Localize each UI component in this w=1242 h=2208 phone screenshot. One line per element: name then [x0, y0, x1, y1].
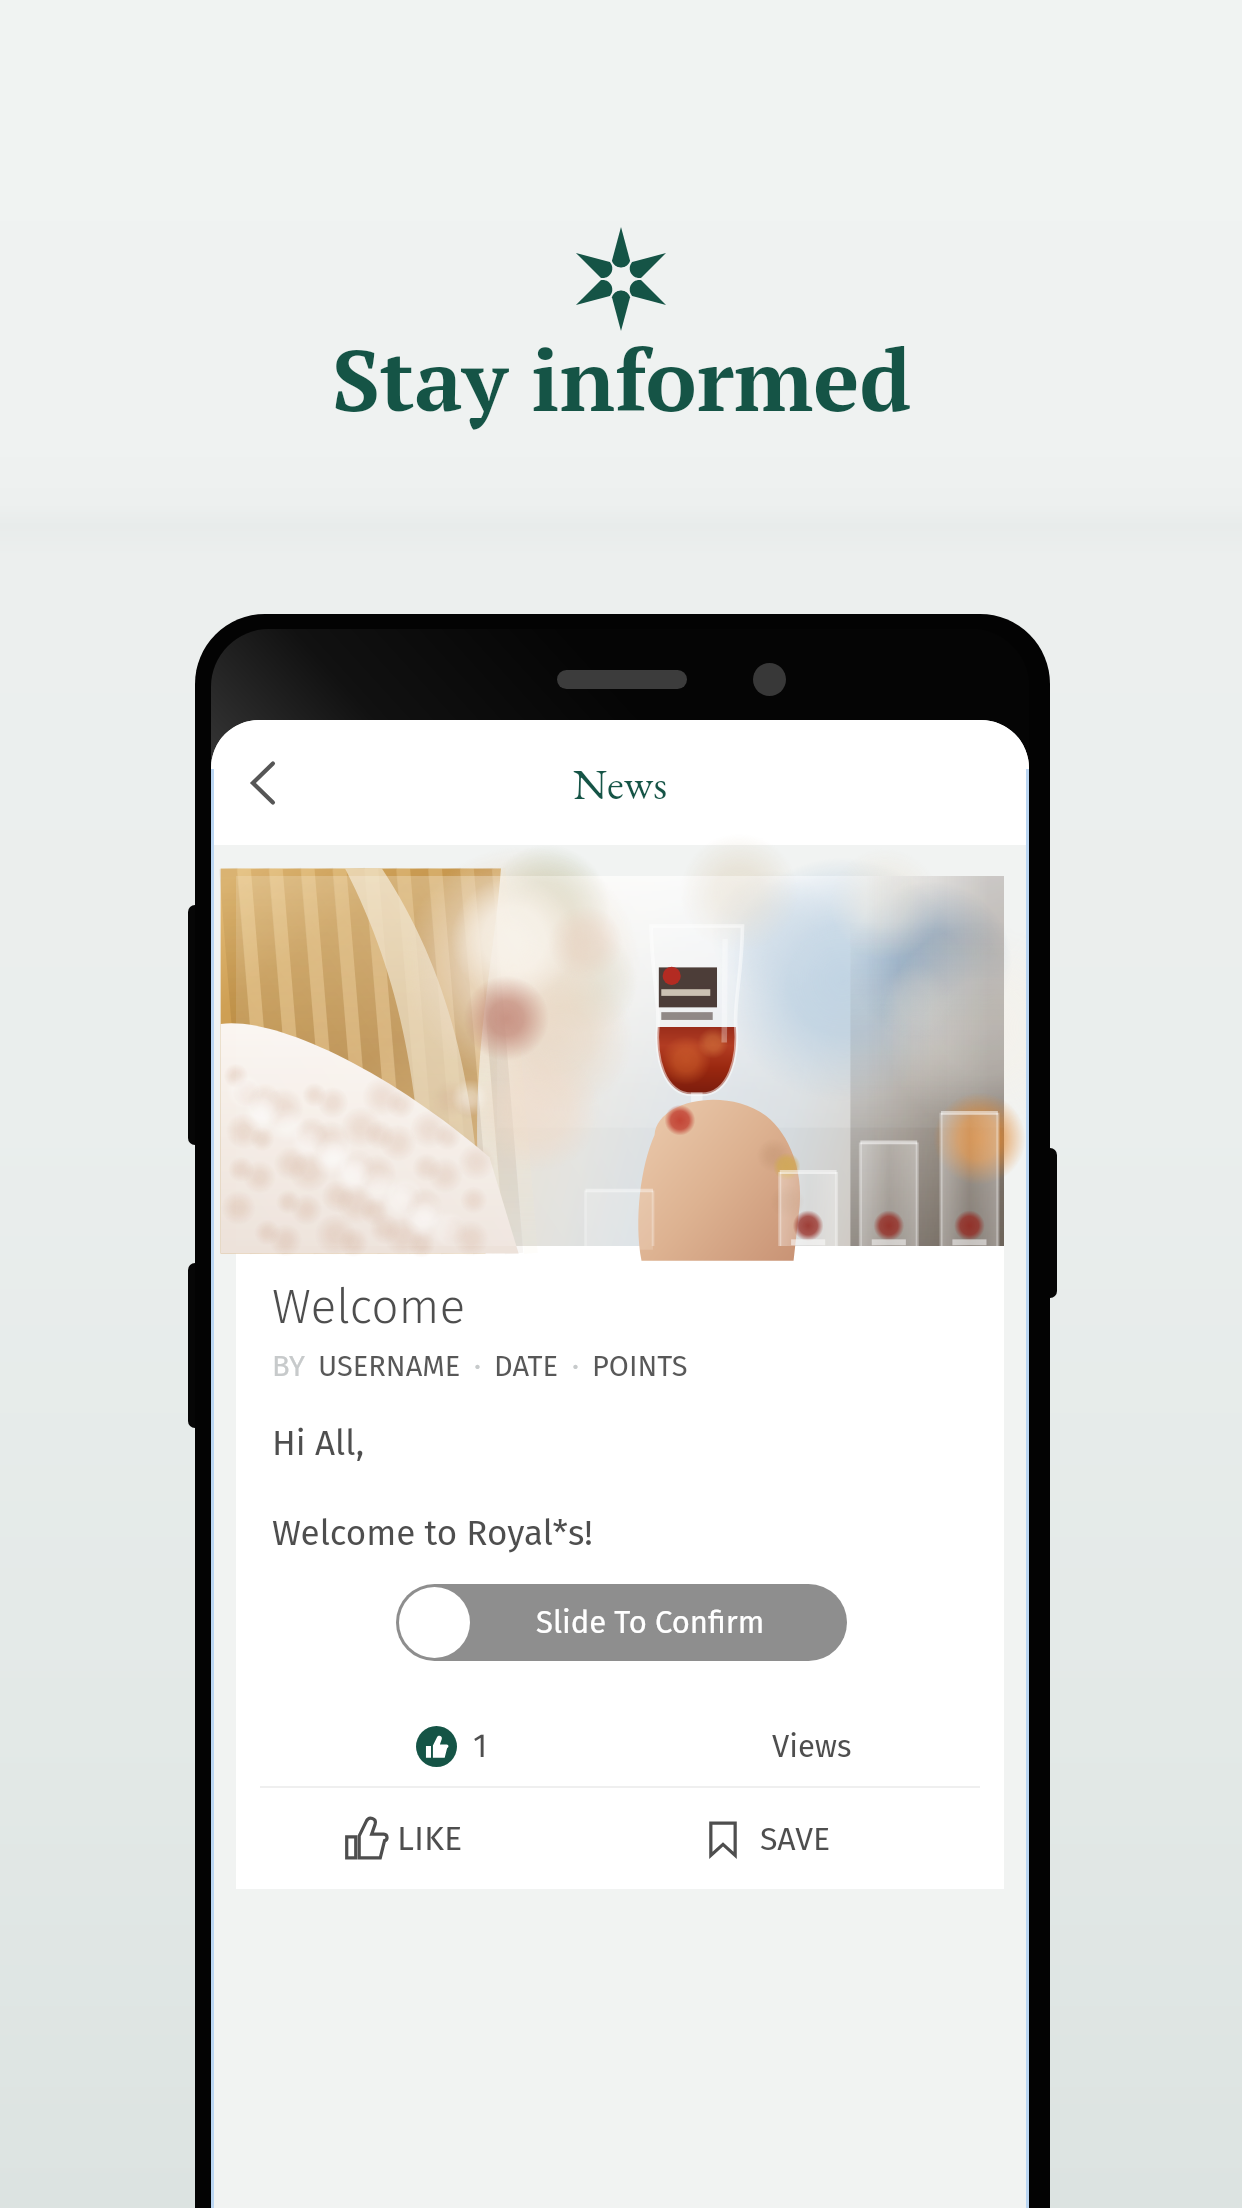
staticText: 1 [473, 1726, 488, 1766]
button[interactable]: SAVE [620, 1788, 1004, 1889]
staticText: Slide To Confirm [536, 1604, 765, 1641]
staticText: Stay informed [332, 322, 911, 436]
staticText: Hi All, [272, 1422, 365, 1464]
staticText: LIKE [397, 1818, 463, 1859]
staticText: · [572, 1349, 579, 1384]
staticText: DATE [494, 1349, 559, 1384]
staticText: · [474, 1349, 481, 1384]
button[interactable]: Slide To Confirm [396, 1584, 847, 1661]
staticText: News [573, 756, 668, 812]
staticText: Views [772, 1728, 852, 1765]
button[interactable]: Back [230, 748, 300, 818]
button[interactable]: LIKE [236, 1788, 620, 1889]
staticText: POINTS [592, 1349, 688, 1384]
staticText: Welcome [272, 1278, 466, 1336]
staticText: USERNAME [318, 1349, 461, 1384]
staticText: BY [272, 1349, 305, 1384]
staticText: SAVE [760, 1820, 831, 1858]
staticText: Welcome to Royal*s! [272, 1512, 593, 1554]
